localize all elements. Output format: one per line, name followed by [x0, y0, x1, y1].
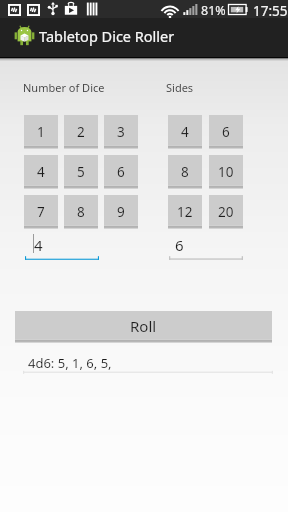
staticText: Number of Dice — [23, 80, 105, 95]
staticText: 17:55 — [253, 2, 288, 20]
staticText: 7 — [37, 203, 45, 221]
button[interactable]: 2 — [64, 115, 98, 148]
staticText: 4 — [181, 123, 189, 141]
staticText: 12 — [177, 203, 193, 221]
button[interactable]: 9 — [104, 195, 138, 228]
staticText: 9 — [117, 203, 125, 221]
button[interactable]: 1 — [24, 115, 58, 148]
button[interactable]: 6 — [104, 155, 138, 188]
staticText: 2 — [77, 123, 85, 141]
button[interactable]: 6 — [209, 115, 243, 148]
staticText: Roll — [130, 316, 157, 336]
button[interactable]: 4 — [24, 155, 58, 188]
button[interactable]: 5 — [64, 155, 98, 188]
button[interactable]: 8 — [64, 195, 98, 228]
other: App icon — [14, 25, 35, 46]
staticText: 6 — [175, 235, 184, 255]
staticText: 1 — [37, 123, 45, 141]
staticText: 20 — [218, 203, 234, 221]
staticText: 6 — [117, 163, 125, 181]
button[interactable]: 8 — [168, 155, 202, 188]
button[interactable]: 3 — [104, 115, 138, 148]
button[interactable]: 6 — [169, 234, 243, 262]
button[interactable]: 10 — [209, 155, 243, 188]
button[interactable]: 4 — [168, 115, 202, 148]
button[interactable]: Roll — [15, 311, 272, 342]
button[interactable]: 7 — [24, 195, 58, 228]
staticText: Sides — [166, 80, 194, 95]
staticText: 4d6: 5, 1, 6, 5, — [28, 354, 112, 372]
staticText: 6 — [222, 123, 230, 141]
staticText: 4 — [34, 235, 43, 255]
staticText: 8 — [181, 163, 189, 181]
staticText: Tabletop Dice Roller — [39, 26, 175, 46]
staticText: 5 — [77, 163, 85, 181]
staticText: 10 — [218, 163, 234, 181]
staticText: 8 — [77, 203, 85, 221]
staticText: 81% — [201, 2, 226, 19]
staticText: 3 — [117, 123, 125, 141]
button[interactable]: 12 — [168, 195, 202, 228]
button[interactable]: 20 — [209, 195, 243, 228]
staticText: 4 — [37, 163, 45, 181]
button[interactable]: 4 — [25, 234, 99, 262]
